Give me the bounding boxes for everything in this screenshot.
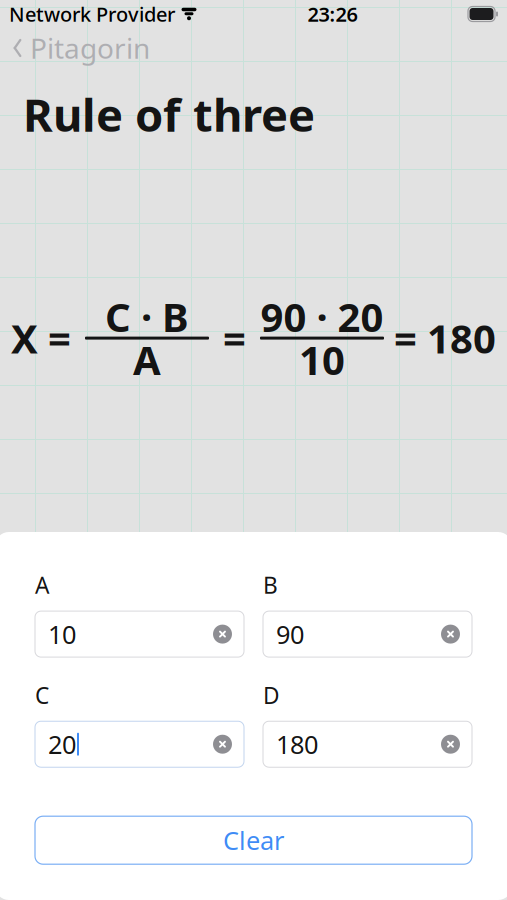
button[interactable]: Clear: [35, 816, 472, 864]
staticText: C · B: [105, 290, 189, 343]
staticText: Pitagorin: [30, 29, 150, 67]
staticText: = 180: [394, 311, 496, 365]
staticText: 10: [48, 617, 76, 651]
staticText: 23:26: [307, 1, 357, 27]
button[interactable]: Clear D: [436, 730, 465, 759]
staticText: 180: [276, 727, 318, 761]
staticText: 90 · 20: [260, 290, 383, 343]
button[interactable]: Clear A: [208, 620, 237, 649]
staticText: A: [35, 570, 49, 600]
staticText: A: [133, 333, 161, 386]
staticText: X =: [11, 311, 71, 365]
staticText: =: [223, 311, 246, 365]
staticText: Network Provider: [9, 1, 175, 27]
button[interactable]: Back to Pitagorin: [0, 28, 160, 68]
staticText: 90: [276, 617, 304, 651]
staticText: C: [35, 680, 49, 710]
staticText: 20: [48, 727, 76, 761]
button[interactable]: Clear C: [208, 730, 237, 759]
button[interactable]: Clear B: [436, 620, 465, 649]
staticText: Clear: [223, 823, 284, 857]
staticText: 10: [299, 333, 345, 386]
staticText: Rule of three: [23, 84, 315, 144]
staticText: B: [263, 570, 278, 600]
staticText: D: [263, 680, 280, 710]
